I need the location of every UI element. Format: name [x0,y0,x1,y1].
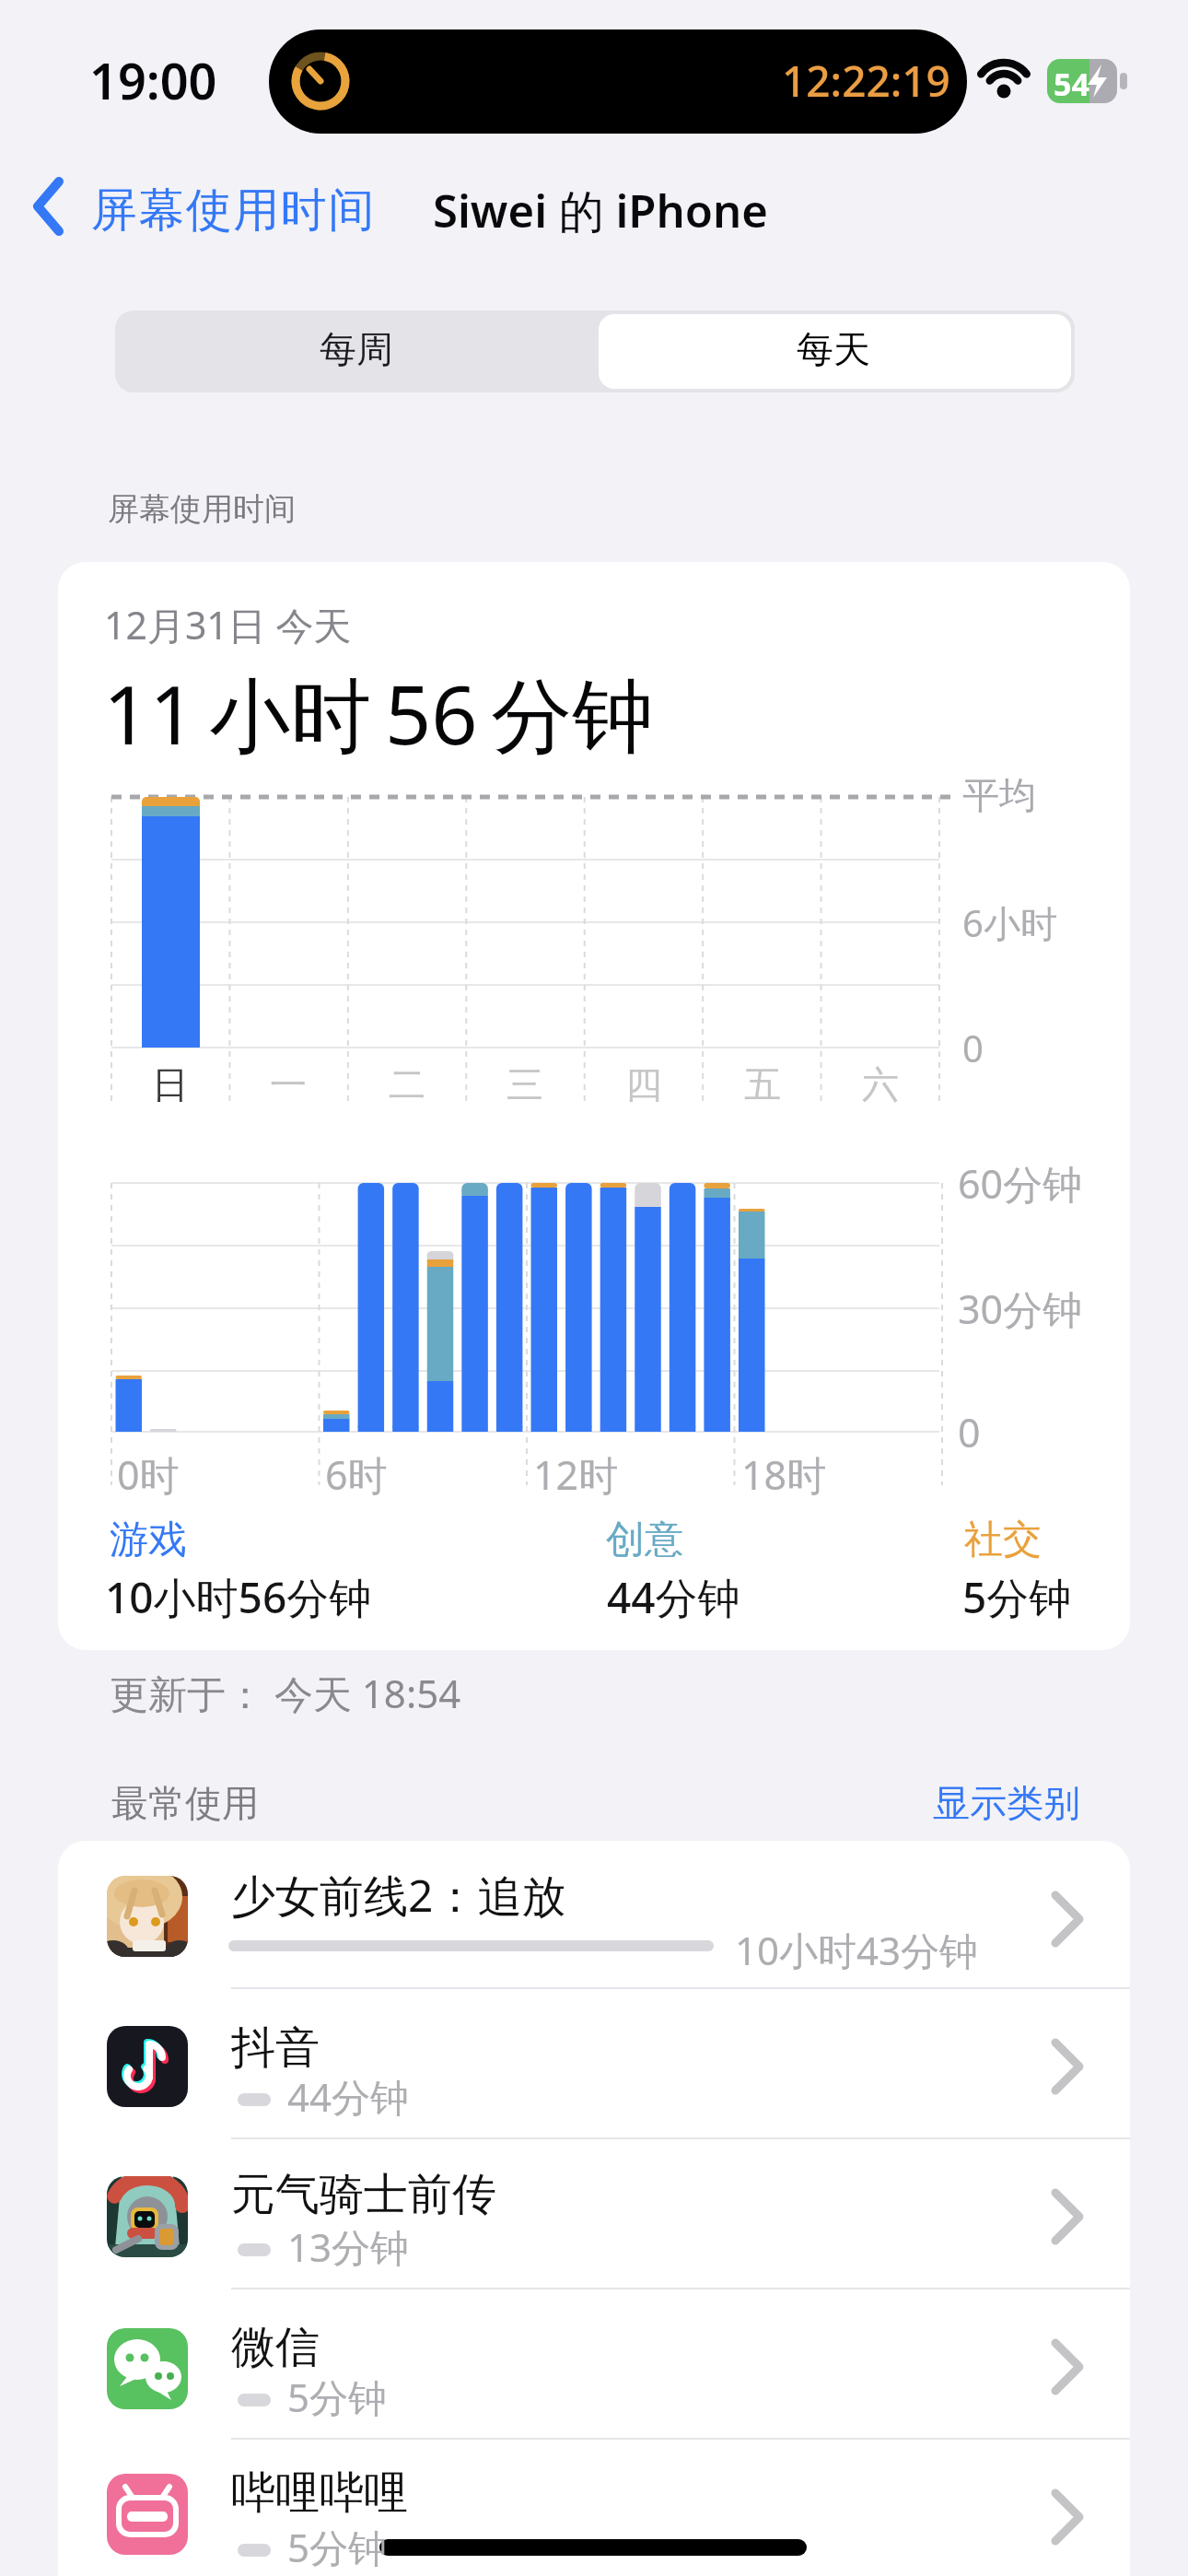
staticText: 屏幕使用时间 [108,489,296,529]
staticText: 13分钟 [287,2220,410,2273]
staticText: 微信 [231,2320,320,2375]
staticText: 5分钟 [287,2371,388,2423]
staticText: 每天 [797,326,870,372]
staticText: 19:00 [89,46,217,114]
staticText: 六 [862,1061,899,1107]
staticText: 社交 [964,1516,1042,1564]
staticText: 5分钟 [962,1568,1072,1626]
staticText: 抖音 [231,2020,320,2076]
staticText: 12时 [533,1447,619,1502]
staticText: 0 [958,1405,981,1459]
button[interactable] [58,2138,1130,2286]
staticText: 12月31日 今天 [104,599,352,650]
staticText: 0时 [117,1447,180,1502]
staticText: 四 [625,1061,662,1107]
staticText: 60分钟 [958,1156,1083,1211]
button[interactable] [58,1841,1130,1988]
staticText: 11 小时 56 分钟 [103,658,654,768]
button[interactable] [58,2289,1130,2436]
button[interactable] [599,314,1071,389]
staticText: 6小时 [962,897,1057,948]
staticText: 最常使用 [111,1780,259,1826]
button[interactable] [58,1988,1130,2136]
staticText: 日 [152,1061,189,1107]
staticText: 少女前线2：追放 [231,1865,566,1926]
staticText: 显示类别 [933,1780,1080,1826]
staticText: 创意 [606,1516,683,1564]
staticText: 二 [389,1061,425,1107]
staticText: 5分钟 [287,2521,388,2573]
button[interactable] [115,310,595,392]
button[interactable] [58,2439,1130,2576]
staticText: 三 [507,1061,543,1107]
staticText: 更新于： 今天 18:54 [110,1667,461,1719]
staticText: 18时 [741,1447,827,1502]
staticText: 10小时43分钟 [735,1924,979,1976]
staticText: 五 [744,1061,781,1107]
staticText: Siwei 的 iPhone [433,180,768,241]
staticText: 30分钟 [958,1282,1083,1336]
staticText: 44分钟 [607,1568,740,1626]
button[interactable]: 显示类别 [926,1774,1091,1829]
staticText: 44分钟 [287,2070,410,2123]
button[interactable] [28,166,387,240]
staticText: 54 [1054,63,1089,105]
staticText: 0 [962,1023,984,1072]
staticText: 元气骑士前传 [231,2167,496,2222]
staticText: 游戏 [110,1516,187,1564]
staticText: 哔哩哔哩 [231,2465,408,2521]
staticText: 10小时56分钟 [105,1568,372,1626]
staticText: 每周 [320,326,393,372]
staticText: 6时 [325,1447,388,1502]
staticText: 平均 [962,772,1036,818]
staticText: 12:22:19 [782,52,950,110]
staticText: 屏幕使用时间 [90,181,375,240]
staticText: 一 [270,1061,307,1107]
